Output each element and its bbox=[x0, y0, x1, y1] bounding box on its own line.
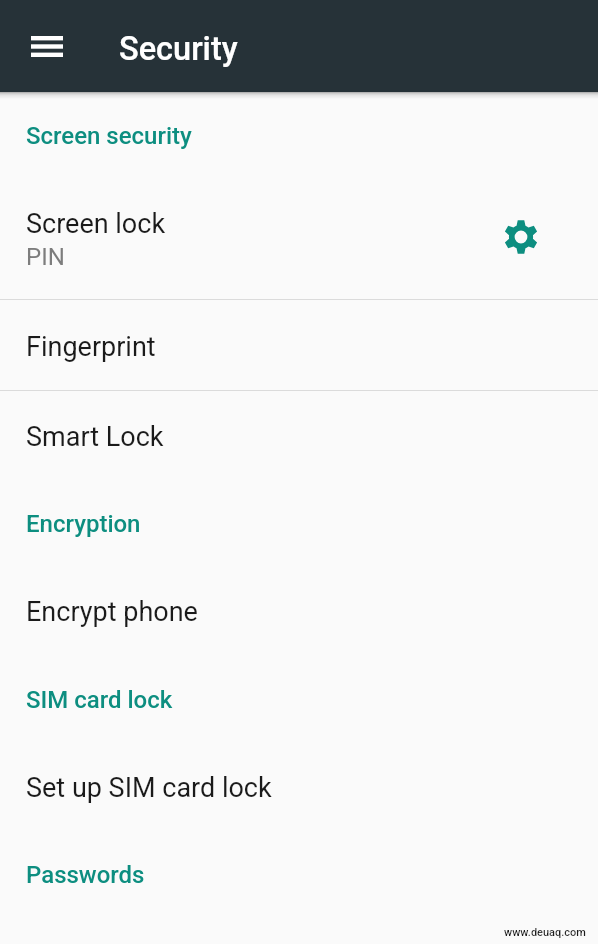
staticText: Security bbox=[119, 30, 238, 68]
button[interactable]: Smart Lock bbox=[0, 390, 598, 480]
button[interactable]: Fingerprint bbox=[0, 299, 598, 389]
staticText: Encrypt phone bbox=[26, 596, 198, 628]
staticText: SIM card lock bbox=[26, 686, 173, 714]
other: Screen lock settings bbox=[504, 220, 538, 254]
staticText: Screen security bbox=[26, 122, 192, 150]
staticText: PIN bbox=[26, 243, 65, 271]
staticText: Encryption bbox=[26, 510, 141, 538]
staticText: Passwords bbox=[26, 861, 145, 889]
button[interactable]: Set up SIM card lock bbox=[0, 741, 598, 831]
staticText: www.deuaq.com bbox=[504, 926, 586, 939]
staticText: Screen lock bbox=[26, 208, 166, 240]
button[interactable]: Screen lock bbox=[0, 199, 598, 298]
button[interactable]: Encrypt phone bbox=[0, 563, 598, 653]
button[interactable]: Screen lock settings bbox=[487, 203, 555, 271]
staticText: Set up SIM card lock bbox=[26, 772, 272, 804]
staticText: Smart Lock bbox=[26, 421, 164, 453]
staticText: Fingerprint bbox=[26, 331, 156, 363]
button[interactable]: Open navigation menu bbox=[15, 14, 79, 78]
